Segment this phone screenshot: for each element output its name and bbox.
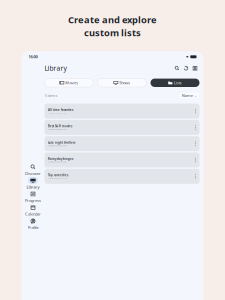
staticText: Top comedies	[48, 173, 68, 177]
button[interactable]: Movies	[44, 79, 93, 87]
button[interactable]: Search	[172, 64, 181, 73]
button[interactable]: Rainy day binges	[44, 152, 199, 167]
staticText: Lists	[174, 80, 182, 85]
staticText: 16:00	[28, 54, 37, 59]
staticText: Creation: 06 Sept 2023 08:54	[48, 161, 67, 163]
staticText: All time favorites	[48, 108, 73, 112]
staticText: ⌄	[194, 93, 197, 98]
staticText: custom lists	[84, 26, 141, 39]
staticText: Creation: 30 Sept 2023 21:46	[48, 177, 67, 179]
button[interactable]: Library	[22, 177, 44, 189]
button[interactable]: Refresh	[181, 64, 190, 73]
button[interactable]: Name	[179, 92, 199, 98]
staticText: Creation: 19 Sept 2024 16:34	[48, 112, 67, 114]
button[interactable]: Change layout	[190, 64, 199, 73]
staticText: Late night thrillers	[48, 141, 75, 144]
staticText: Create and explore	[68, 13, 157, 26]
button[interactable]: Calendar	[22, 204, 44, 216]
staticText: Profile	[27, 225, 38, 230]
button[interactable]: Shows	[97, 79, 146, 87]
button[interactable]: All time favorites	[44, 104, 199, 119]
staticText: Discover	[25, 171, 41, 176]
staticText: Movies	[65, 80, 78, 85]
staticText: Best Sci-Fi movies	[48, 124, 72, 128]
staticText: Rainy day binges	[48, 157, 73, 161]
staticText: Progress	[25, 198, 41, 203]
button[interactable]: Top comedies	[44, 169, 199, 184]
staticText: Library	[26, 184, 39, 190]
button[interactable]: Lists	[150, 79, 199, 87]
staticText: Shows	[119, 80, 130, 85]
staticText: Name	[182, 93, 193, 98]
button[interactable]: Profile	[22, 218, 44, 230]
staticText: Library	[44, 64, 66, 73]
staticText: Calendar	[25, 211, 41, 217]
staticText: Creation: 19 Sept 2024 10:20	[48, 128, 67, 130]
button[interactable]: Best Sci-Fi movies	[44, 120, 199, 135]
staticText: Creation: 12 Feb 2023 17:08	[48, 145, 67, 147]
button[interactable]: Late night thrillers	[44, 136, 199, 151]
button[interactable]: Discover	[22, 164, 44, 176]
button[interactable]: Progress	[22, 191, 44, 203]
staticText: 5 items	[44, 93, 57, 98]
